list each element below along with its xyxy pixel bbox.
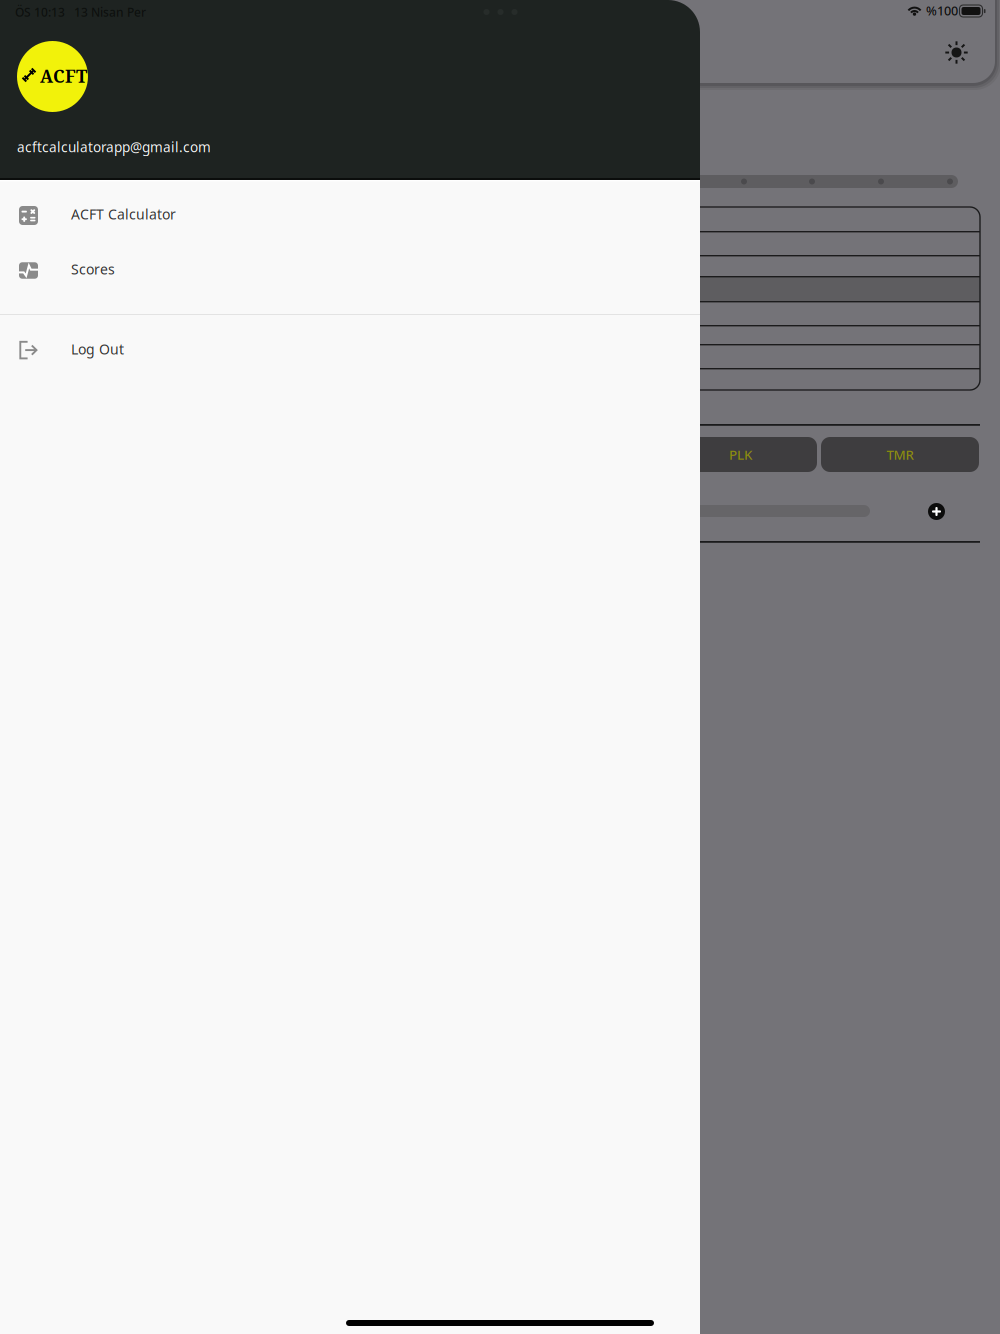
staticText: Scores [71, 259, 115, 279]
staticText: acftcalculatorapp@gmail.com [17, 138, 211, 156]
button[interactable]: Brightness [945, 41, 968, 64]
staticText: ACFT [40, 64, 87, 88]
button[interactable]: Log Out [0, 323, 700, 377]
button[interactable]: ACFT Calculator [0, 188, 700, 242]
staticText: %100 [926, 2, 958, 19]
button[interactable]: PLK [664, 437, 817, 472]
staticText: TMR [886, 445, 913, 464]
button[interactable]: Add [928, 503, 945, 520]
staticText: ÖS 10:13 13 Nisan Per [15, 4, 146, 20]
staticText: PLK [729, 445, 752, 464]
button[interactable]: Scores [0, 243, 700, 297]
button[interactable]: TMR [821, 437, 979, 472]
staticText: ACFT Calculator [71, 204, 176, 224]
staticText: Log Out [71, 339, 124, 359]
